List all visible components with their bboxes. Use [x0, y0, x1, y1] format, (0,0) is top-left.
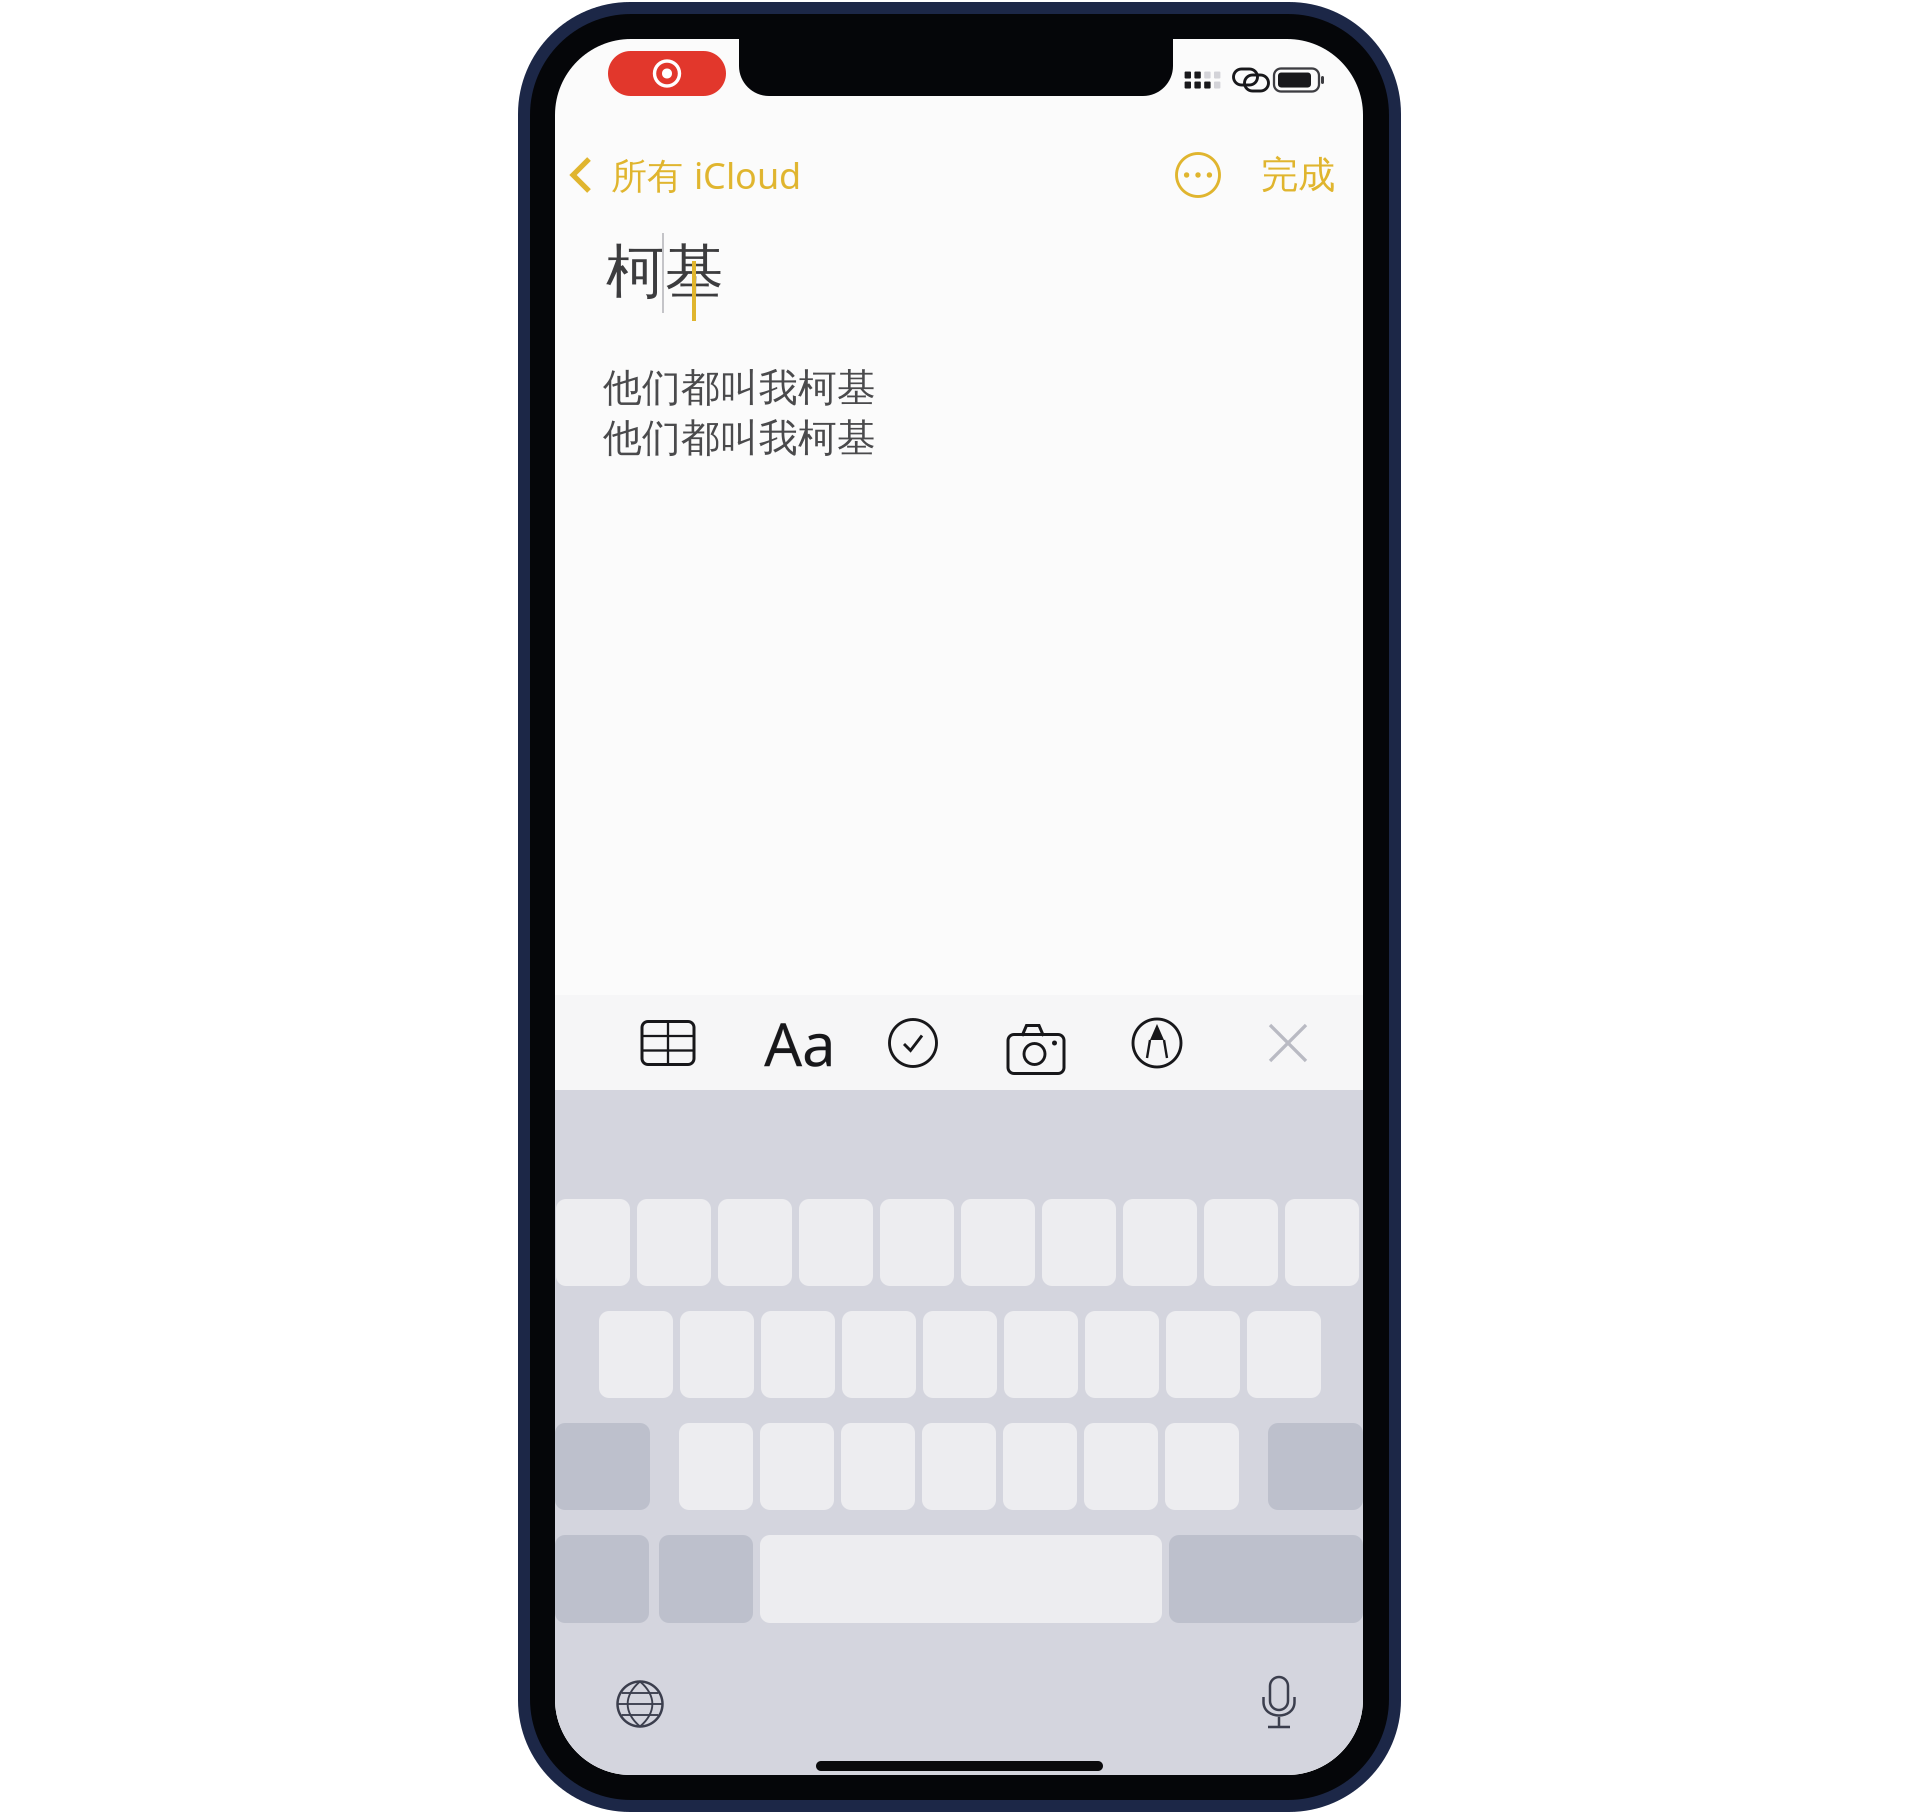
staticText: 所有 iCloud	[611, 151, 801, 199]
button[interactable]: Screen recording	[608, 51, 726, 96]
staticText: 他们都叫我柯基	[603, 364, 876, 411]
button[interactable]: Close toolbar	[1268, 1023, 1308, 1063]
staticText: 完成	[1261, 152, 1335, 198]
button[interactable]: Checklist	[888, 1017, 938, 1069]
button[interactable]: More options	[1163, 142, 1233, 208]
button[interactable]: Markup	[1131, 1016, 1183, 1070]
staticText: 他们都叫我柯基	[603, 414, 876, 462]
button[interactable]: Dictation	[1262, 1677, 1296, 1729]
button[interactable]: Camera	[1007, 1016, 1065, 1070]
button[interactable]: Text format	[755, 1015, 845, 1071]
staticText: 柯基	[606, 236, 724, 308]
button[interactable]: Insert table	[638, 1018, 698, 1068]
button[interactable]: 所有 iCloud	[569, 142, 869, 208]
button[interactable]: 完成	[1261, 142, 1371, 208]
button[interactable]: Switch keyboard	[616, 1680, 664, 1728]
staticText: Aa	[764, 1003, 836, 1083]
